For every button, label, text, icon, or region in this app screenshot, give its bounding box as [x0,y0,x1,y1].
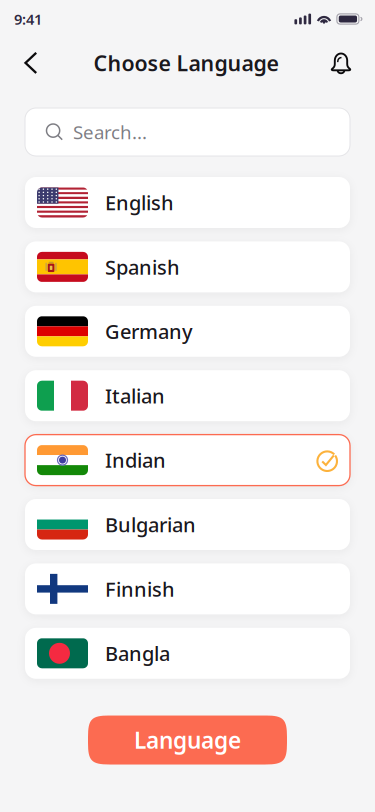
staticText: Choose Language [93,49,278,77]
button[interactable]: Bangla [25,628,350,679]
staticText: Bulgarian [105,511,196,538]
staticText: Finnish [105,576,175,602]
staticText: Italian [105,382,165,409]
staticText: Language [134,725,241,755]
staticText: Search... [73,120,147,144]
button[interactable]: Italian [25,370,350,421]
staticText: Germany [105,318,193,345]
button[interactable]: Bulgarian [25,499,350,550]
staticText: English [105,189,174,216]
button[interactable]: Back [11,42,51,84]
button[interactable]: Search... [25,108,350,156]
staticText: Spanish [105,254,180,280]
button[interactable]: Notifications [321,42,361,84]
button[interactable]: Language [88,715,287,764]
button[interactable]: Germany [25,306,350,357]
button[interactable]: Spanish [25,241,350,292]
staticText: 9:41 [14,9,42,29]
button[interactable]: Finnish [25,563,350,614]
button[interactable]: Indian [25,435,350,486]
staticText: Indian [105,447,166,473]
staticText: Bangla [105,640,170,667]
button[interactable]: English [25,177,350,228]
